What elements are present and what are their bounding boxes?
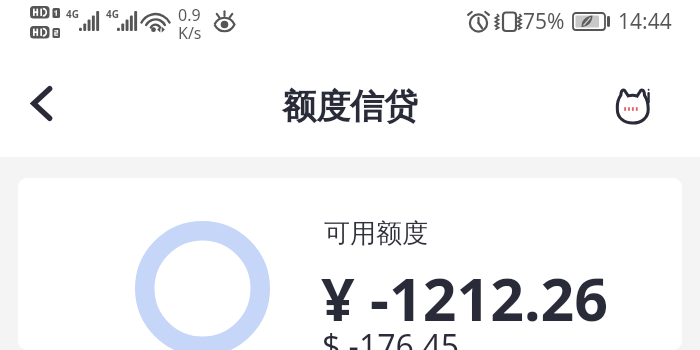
- button[interactable]: 可用额度: [18, 178, 682, 350]
- staticText: 0.9 K/s: [178, 4, 202, 44]
- staticText: 75%: [523, 7, 565, 36]
- staticText: ¥ -1212.26: [321, 258, 609, 338]
- staticText: $ -176.45: [322, 324, 460, 350]
- staticText: 14:44: [618, 7, 672, 36]
- staticText: 可用额度: [324, 217, 428, 250]
- button[interactable]: Back: [15, 77, 67, 129]
- staticText: 4G: [66, 7, 79, 21]
- staticText: 额度信贷: [282, 85, 418, 128]
- button[interactable]: Customer service: [604, 77, 660, 133]
- staticText: 4G: [106, 7, 119, 21]
